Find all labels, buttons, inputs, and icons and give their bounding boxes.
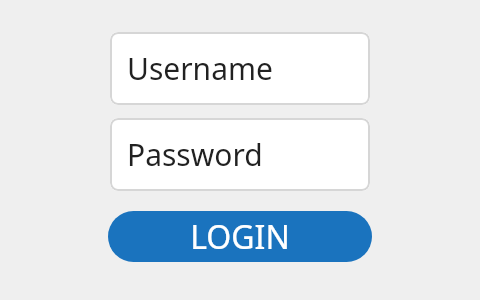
staticText: Password — [127, 134, 263, 175]
button[interactable]: Password — [110, 118, 370, 191]
staticText: LOGIN — [190, 215, 290, 259]
button[interactable]: Username — [110, 32, 370, 105]
staticText: Username — [127, 48, 273, 89]
button[interactable]: Login — [108, 211, 372, 262]
